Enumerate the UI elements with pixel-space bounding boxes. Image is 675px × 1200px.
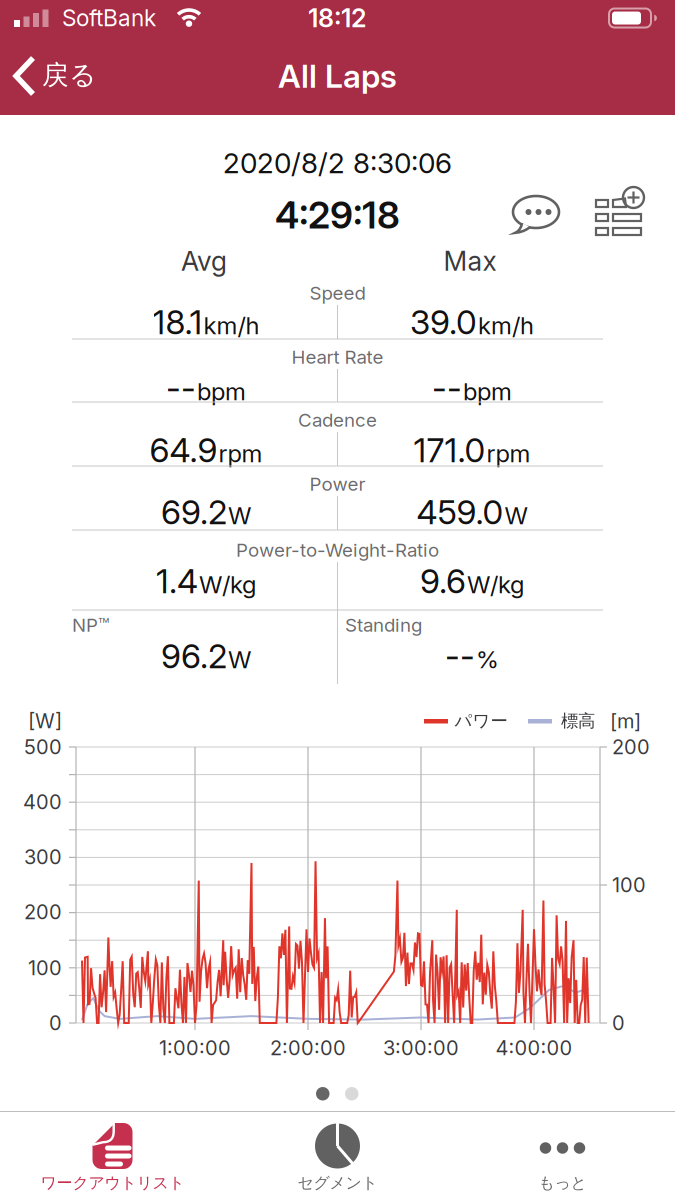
staticText: NP™ [72, 614, 109, 636]
staticText: Cadence [298, 409, 377, 431]
staticText: 戻る [42, 59, 96, 91]
staticText: 9.6 [420, 561, 466, 601]
staticText: 459.0 [416, 492, 503, 532]
staticText: 200 [612, 735, 650, 759]
staticText: 39.0 [410, 302, 477, 342]
staticText: W [504, 501, 527, 529]
staticText: W/kg [467, 570, 524, 598]
button[interactable]: ワークアウトリスト [0, 1111, 225, 1200]
staticText: 300 [24, 845, 62, 869]
staticText: 18:12 [308, 3, 367, 33]
staticText: SoftBank [62, 5, 156, 31]
staticText: -- [445, 636, 475, 676]
staticText: Max [443, 245, 496, 277]
staticText: rpm [486, 439, 530, 467]
staticText: Power-to-Weight-Ratio [236, 539, 439, 561]
staticText: 3:00:00 [383, 1036, 459, 1060]
staticText: W [228, 501, 251, 529]
staticText: 500 [24, 735, 62, 759]
staticText: Speed [309, 282, 365, 304]
staticText: セグメント [297, 1173, 377, 1193]
staticText: 2020/8/2 8:30:06 [223, 146, 452, 179]
button[interactable]: Comments [510, 193, 562, 237]
staticText: 96.2 [161, 636, 227, 676]
staticText: 200 [24, 900, 62, 924]
staticText: もっと [538, 1173, 586, 1193]
staticText: Avg [181, 245, 227, 277]
staticText: rpm [218, 439, 262, 467]
button[interactable]: 戻る [8, 54, 120, 98]
staticText: 64.9 [149, 430, 217, 470]
staticText: Power [309, 473, 365, 495]
staticText: パワー [454, 710, 507, 732]
button[interactable]: Add lap details [595, 192, 645, 236]
staticText: 標高 [561, 710, 595, 732]
staticText: 171.0 [413, 430, 485, 470]
staticText: km/h [203, 311, 259, 339]
staticText: 18.1 [152, 302, 202, 342]
staticText: 1.4 [156, 561, 198, 601]
staticText: -- [432, 368, 462, 408]
staticText: 2:00:00 [270, 1036, 346, 1060]
staticText: 400 [23, 790, 62, 814]
staticText: % [476, 645, 499, 673]
staticText: bpm [463, 377, 512, 405]
staticText: bpm [197, 377, 246, 405]
staticText: -- [166, 368, 196, 408]
staticText: 100 [612, 873, 646, 897]
staticText: [W] [28, 709, 62, 733]
button[interactable]: セグメント [225, 1111, 450, 1200]
staticText: 0 [612, 1011, 625, 1035]
staticText: 69.2 [161, 492, 227, 532]
staticText: Standing [345, 614, 422, 636]
staticText: 4:29:18 [275, 193, 400, 237]
staticText: 0 [49, 1011, 62, 1035]
button[interactable]: もっと [450, 1111, 675, 1200]
staticText: km/h [478, 311, 534, 339]
staticText: W/kg [199, 570, 256, 598]
staticText: [m] [610, 709, 641, 733]
staticText: 1:00:00 [159, 1036, 231, 1060]
staticText: Heart Rate [291, 346, 383, 368]
staticText: 4:00:00 [495, 1036, 572, 1060]
staticText: 100 [28, 956, 62, 980]
staticText: ワークアウトリスト [40, 1173, 184, 1193]
staticText: W [228, 645, 251, 673]
staticText: All Laps [278, 57, 397, 95]
